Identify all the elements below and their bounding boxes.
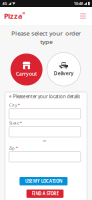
staticText: Delivery	[54, 70, 74, 77]
button[interactable]: Pizza home	[4, 10, 25, 22]
staticText: or	[43, 138, 47, 143]
button[interactable]: City	[9, 108, 80, 119]
staticText: Please enter your location details	[13, 93, 80, 99]
staticText: City	[9, 102, 17, 108]
button[interactable]: Delivery	[47, 52, 80, 86]
staticText: *	[20, 120, 22, 126]
staticText: Pizza	[4, 11, 22, 21]
staticText: USE MY LOCATION	[25, 178, 62, 184]
staticText: Carryout	[16, 70, 37, 77]
button[interactable]: FIND A STORE	[26, 189, 63, 198]
staticText: 10:48	[74, 1, 83, 6]
button[interactable]: Zip	[9, 151, 80, 162]
staticText: FIND A STORE	[31, 191, 58, 197]
staticText: State	[9, 120, 19, 126]
staticText: Please select your order type	[11, 29, 81, 46]
button[interactable]: State	[9, 126, 80, 137]
staticText: co	[22, 11, 25, 15]
staticText: *	[16, 145, 18, 151]
button[interactable]: Menu	[78, 10, 88, 22]
button[interactable]: USE MY LOCATION	[19, 177, 67, 185]
button[interactable]: Carryout	[10, 53, 42, 85]
staticText: *	[18, 102, 20, 108]
staticText: Zip	[9, 145, 15, 151]
staticText: 4G	[2, 1, 7, 6]
